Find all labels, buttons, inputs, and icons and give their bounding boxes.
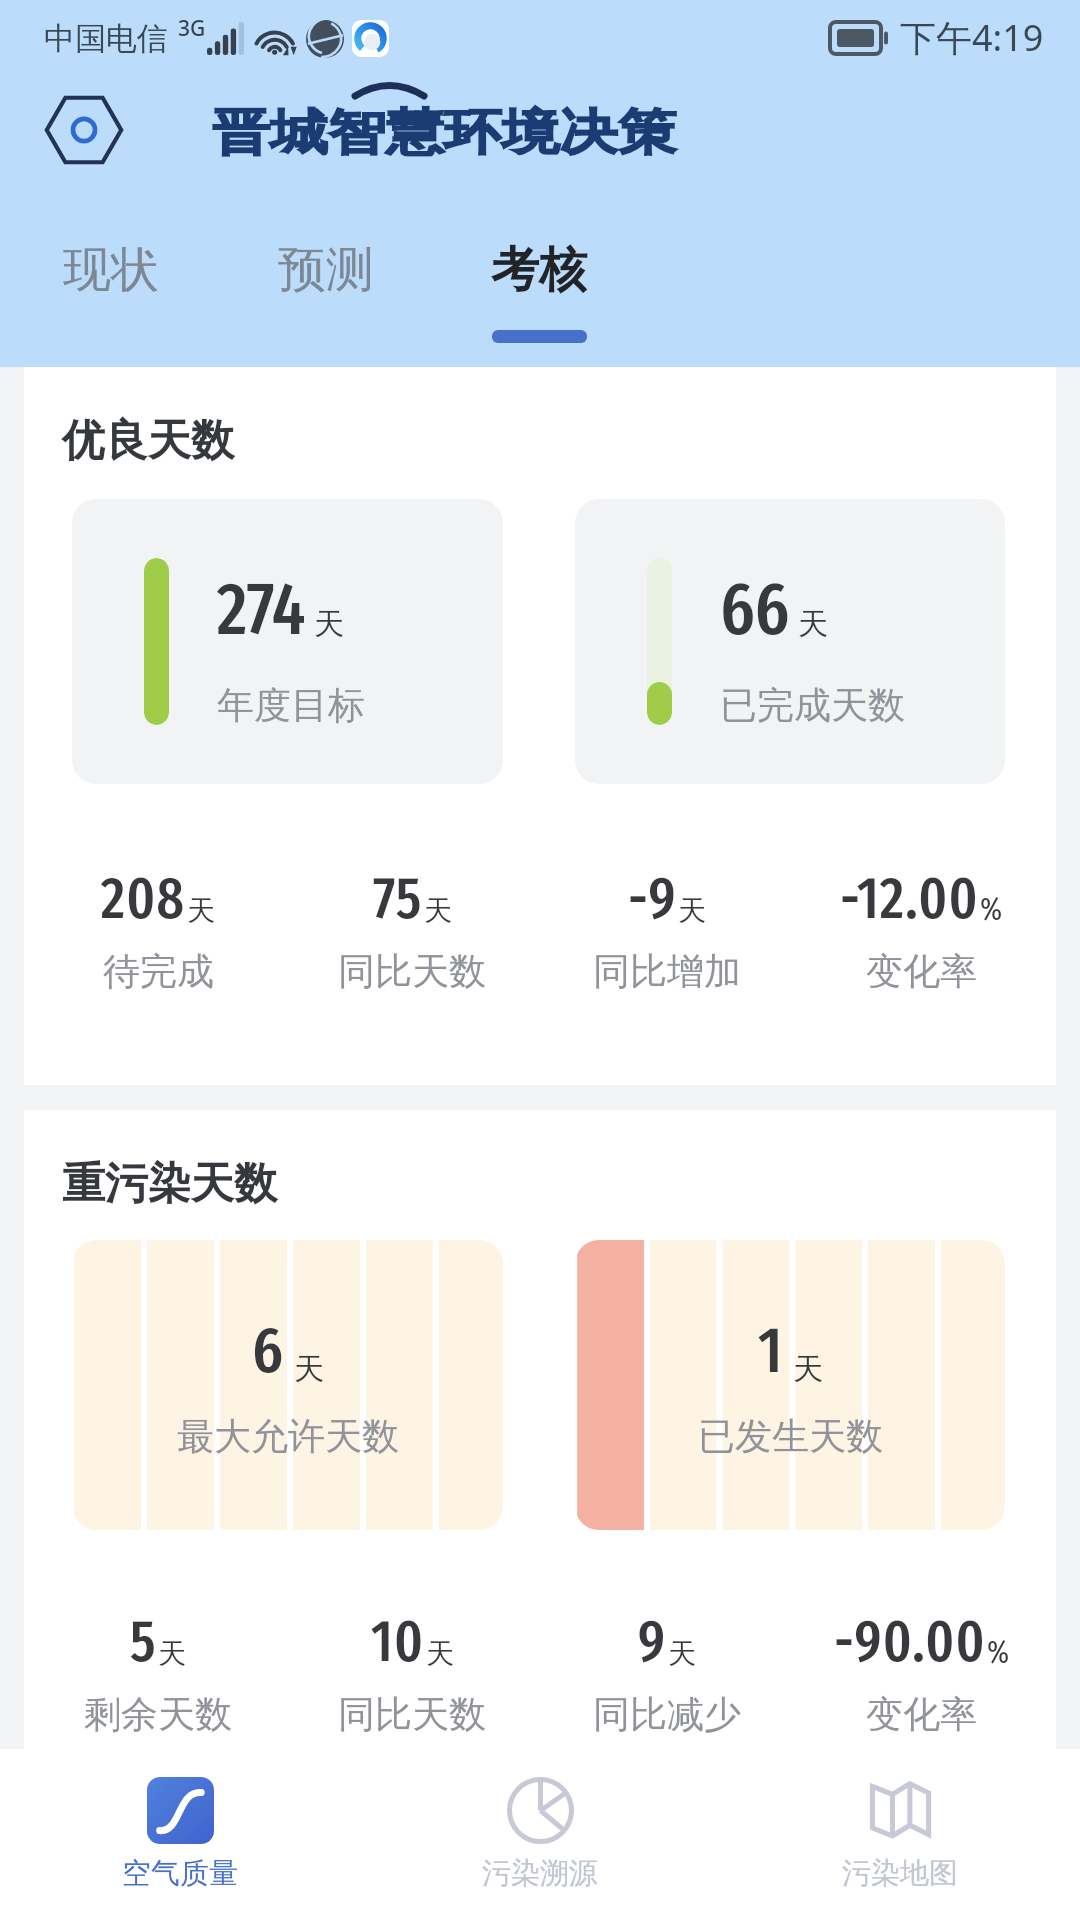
other: Air quality [147,1777,214,1844]
staticText: 已完成天数 [720,682,905,729]
staticText: 66 [720,566,789,654]
staticText: 5 [130,1607,157,1677]
staticText: 天 [424,893,452,928]
staticText: 天 [798,605,828,643]
staticText: 已发生天数 [698,1413,883,1460]
staticText: 208 [101,864,186,934]
staticText: 下午4:19 [900,13,1044,62]
staticText: 年度目标 [217,682,365,729]
staticText: 天 [158,1636,186,1671]
staticText: 同比天数 [338,948,486,995]
staticText: 天 [793,1350,823,1388]
staticText: 剩余天数 [84,1691,232,1738]
staticText: 预测 [278,240,374,300]
staticText: 天 [426,1636,454,1671]
staticText: 75 [373,864,423,934]
staticText: 空气质量 [122,1855,238,1892]
staticText: 天 [668,1636,696,1671]
staticText: % [980,890,1003,928]
button[interactable]: 预测 [255,192,397,367]
staticText: 同比减少 [593,1691,741,1738]
staticText: 9 [638,1607,667,1677]
staticText: 变化率 [866,948,977,995]
staticText: 天 [294,1350,324,1388]
staticText: -9 [628,864,677,934]
staticText: % [987,1633,1010,1671]
other: Pollution source [507,1777,574,1844]
staticText: 最大允许天数 [177,1413,399,1460]
staticText: 重污染天数 [62,1157,277,1211]
button[interactable]: 考核 [468,192,610,367]
staticText: 天 [678,893,706,928]
staticText: 变化率 [866,1691,977,1738]
staticText: 考核 [491,240,587,300]
button[interactable]: Pollution map [720,1749,1080,1920]
staticText: 同比增加 [593,948,741,995]
staticText: 污染地图 [842,1855,958,1892]
staticText: 待完成 [103,948,214,995]
staticText: 中国电信 [44,19,168,58]
staticText: 1 [758,1311,783,1389]
button[interactable]: 现状 [40,192,182,367]
button[interactable]: Air quality [0,1749,360,1920]
staticText: 污染溯源 [482,1855,598,1892]
staticText: 天 [187,893,215,928]
staticText: 10 [371,1607,425,1677]
staticText: 6 [252,1311,284,1389]
staticText: -12.00 [840,864,979,934]
staticText: 天 [314,605,344,643]
staticText: -90.00 [834,1607,986,1677]
button[interactable]: Pollution source [360,1749,720,1920]
staticText: 3G [178,14,206,43]
staticText: 现状 [63,240,159,300]
other: Pollution map [867,1777,934,1844]
staticText: 同比天数 [338,1691,486,1738]
staticText: 晋城智慧环境决策 [212,102,676,164]
staticText: 优良天数 [62,414,234,468]
staticText: 274 [217,566,305,654]
